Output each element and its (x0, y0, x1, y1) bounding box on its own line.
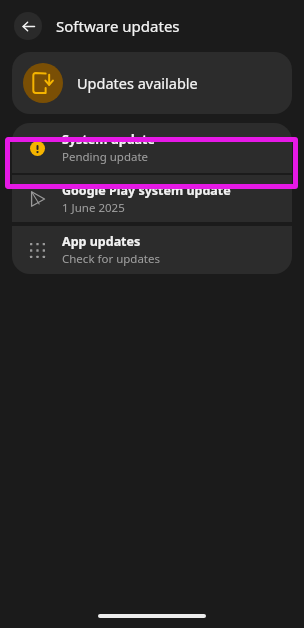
button[interactable]: System update (12, 123, 292, 173)
staticText: Google Play system update (62, 182, 231, 199)
staticText: App updates (62, 233, 141, 250)
button[interactable]: App updates (12, 226, 292, 274)
button[interactable]: Google Play system update (12, 175, 292, 222)
staticText: 1 June 2025 (62, 200, 125, 216)
staticText: Check for updates (62, 251, 161, 267)
staticText: Pending update (62, 149, 149, 165)
button[interactable]: Back (14, 12, 42, 40)
staticText: System update (62, 131, 155, 148)
staticText: Updates available (77, 73, 198, 93)
button[interactable]: Updates available (12, 52, 292, 114)
staticText: Software updates (56, 16, 180, 36)
